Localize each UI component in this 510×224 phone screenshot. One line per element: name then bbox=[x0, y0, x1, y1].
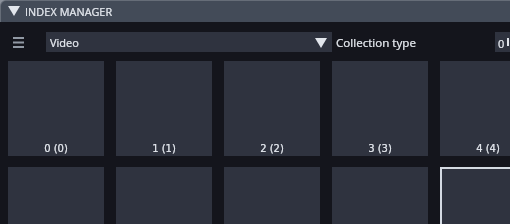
staticText: 1 (1) bbox=[152, 143, 176, 155]
button[interactable]: INDEX MANAGER bbox=[0, 0, 510, 22]
staticText: 0 bbox=[498, 36, 505, 51]
staticText: 2 (2) bbox=[260, 143, 284, 155]
button[interactable] bbox=[440, 167, 510, 224]
button[interactable]: 2 (2) bbox=[224, 61, 320, 156]
button[interactable]: 3 (3) bbox=[332, 61, 428, 156]
button[interactable]: 0 (0) bbox=[8, 61, 104, 156]
button[interactable]: Video bbox=[46, 32, 332, 52]
staticText: 4 (4) bbox=[476, 143, 500, 155]
staticText: Video bbox=[50, 35, 79, 50]
button[interactable]: 0 bbox=[495, 32, 510, 52]
staticText: 0 (0) bbox=[44, 143, 68, 155]
button[interactable]: 4 (4) bbox=[440, 61, 510, 156]
button[interactable]: Collection type bbox=[336, 34, 416, 50]
staticText: Collection type bbox=[336, 35, 416, 51]
staticText: 3 (3) bbox=[368, 143, 392, 155]
button[interactable]: 1 (1) bbox=[116, 61, 212, 156]
button[interactable]: Menu bbox=[12, 32, 24, 52]
staticText: INDEX MANAGER bbox=[25, 4, 113, 19]
